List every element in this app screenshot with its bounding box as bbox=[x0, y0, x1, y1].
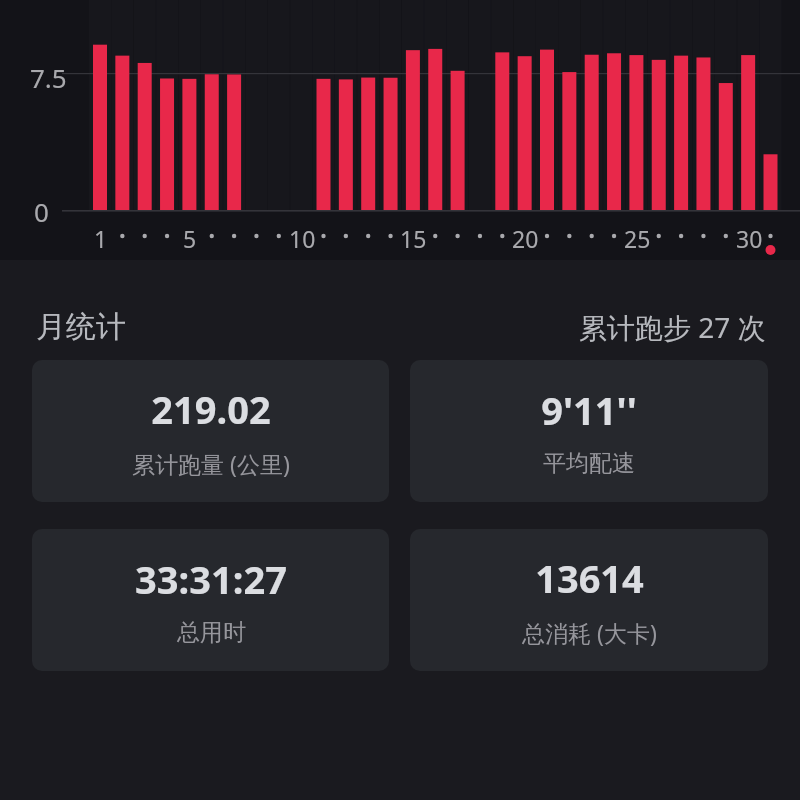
staticText: 10 bbox=[289, 223, 316, 254]
staticText: 平均配速 bbox=[543, 449, 635, 478]
button[interactable]: 累计跑步 27 次 bbox=[579, 308, 766, 346]
staticText: 30 bbox=[736, 223, 763, 254]
staticText: 累计跑量 (公里) bbox=[132, 448, 290, 479]
staticText: 20 bbox=[512, 223, 539, 254]
staticText: 13614 bbox=[535, 552, 644, 604]
button[interactable]: 总消耗 (大卡) bbox=[410, 529, 768, 671]
staticText: 累计跑步 27 次 bbox=[579, 308, 766, 346]
staticText: 7.5 bbox=[30, 60, 67, 95]
staticText: 219.02 bbox=[151, 383, 271, 435]
staticText: 5 bbox=[183, 223, 197, 254]
staticText: 总用时 bbox=[177, 618, 246, 647]
staticText: 月统计 bbox=[36, 308, 126, 346]
button[interactable]: 平均配速 bbox=[410, 360, 768, 502]
staticText: 25 bbox=[624, 223, 651, 254]
staticText: 33:31:27 bbox=[135, 553, 287, 605]
staticText: 1 bbox=[94, 223, 108, 254]
staticText: 总消耗 (大卡) bbox=[522, 617, 657, 648]
staticText: 9'11'' bbox=[541, 384, 637, 436]
staticText: 15 bbox=[400, 223, 427, 254]
staticText: 0 bbox=[34, 194, 49, 229]
button[interactable]: 总用时 bbox=[32, 529, 389, 671]
button[interactable]: 累计跑量 (公里) bbox=[32, 360, 389, 502]
